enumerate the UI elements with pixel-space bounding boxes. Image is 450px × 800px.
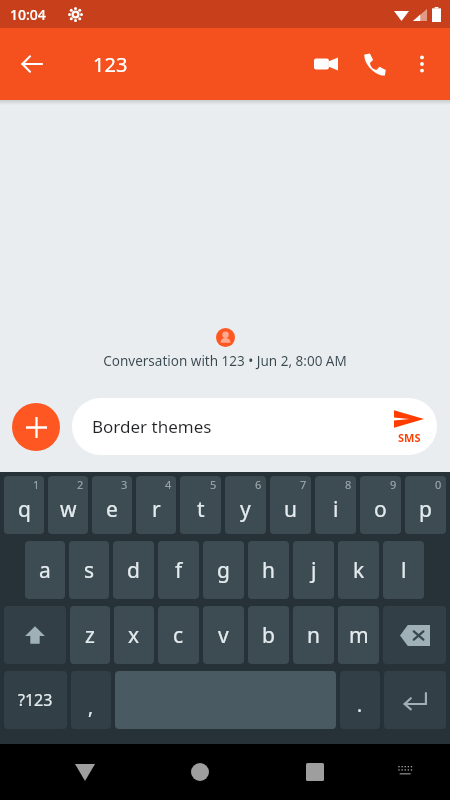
button[interactable]: r: [136, 476, 176, 534]
staticText: p: [419, 495, 432, 524]
button[interactable]: k: [338, 541, 379, 599]
button[interactable]: d: [113, 541, 154, 599]
button[interactable]: Back: [61, 748, 109, 796]
staticText: 5: [210, 477, 217, 492]
staticText: h: [262, 556, 275, 585]
button[interactable]: b: [248, 606, 289, 664]
staticText: c: [173, 621, 184, 650]
button[interactable]: w: [48, 476, 88, 534]
staticText: l: [401, 556, 407, 585]
button[interactable]: g: [203, 541, 244, 599]
staticText: a: [39, 556, 51, 585]
button[interactable]: l: [383, 541, 424, 599]
staticText: b: [262, 621, 275, 650]
button[interactable]: Backspace: [383, 606, 446, 664]
button[interactable]: p: [405, 476, 446, 534]
button[interactable]: i: [315, 476, 356, 534]
staticText: i: [333, 495, 339, 524]
button[interactable]: ,: [71, 671, 111, 729]
button[interactable]: a: [25, 541, 65, 599]
staticText: o: [374, 495, 387, 524]
button[interactable]: y: [225, 476, 266, 534]
staticText: m: [349, 621, 369, 650]
staticText: e: [106, 495, 118, 524]
button[interactable]: c: [158, 606, 199, 664]
button[interactable]: z: [70, 606, 110, 664]
button[interactable]: Border themes: [72, 398, 437, 455]
button[interactable]: v: [203, 606, 244, 664]
button[interactable]: s: [69, 541, 109, 599]
button[interactable]: x: [114, 606, 154, 664]
staticText: w: [60, 495, 77, 524]
button[interactable]: u: [270, 476, 311, 534]
button[interactable]: Recents: [291, 748, 339, 796]
staticText: 123: [93, 51, 128, 78]
staticText: z: [85, 621, 95, 650]
button[interactable]: o: [360, 476, 401, 534]
button[interactable]: More options: [398, 40, 446, 88]
button[interactable]: t: [180, 476, 221, 534]
staticText: 0: [435, 477, 442, 492]
button[interactable]: Keyboard: [385, 750, 429, 794]
staticText: ,: [88, 694, 94, 720]
staticText: Border themes: [92, 415, 212, 438]
button[interactable]: Send SMS: [394, 409, 424, 445]
button[interactable]: n: [293, 606, 334, 664]
staticText: ?123: [18, 689, 53, 711]
staticText: 3: [121, 477, 128, 492]
staticText: 1: [33, 477, 40, 492]
staticText: 4: [165, 477, 172, 492]
staticText: v: [218, 621, 229, 650]
button[interactable]: Call: [350, 40, 398, 88]
staticText: y: [240, 495, 251, 524]
staticText: s: [84, 556, 95, 585]
staticText: .: [357, 692, 363, 718]
button[interactable]: Enter: [384, 671, 446, 729]
staticText: t: [197, 495, 205, 524]
button[interactable]: j: [293, 541, 334, 599]
staticText: x: [128, 621, 140, 650]
button[interactable]: Back: [8, 40, 56, 88]
staticText: 8: [345, 477, 352, 492]
button[interactable]: q: [4, 476, 44, 534]
staticText: k: [353, 556, 365, 585]
staticText: 7: [300, 477, 307, 492]
button[interactable]: h: [248, 541, 289, 599]
button[interactable]: f: [158, 541, 199, 599]
button[interactable]: Add attachment: [12, 403, 60, 451]
staticText: SMS: [398, 430, 421, 445]
staticText: q: [18, 495, 31, 524]
staticText: f: [175, 556, 183, 585]
staticText: u: [284, 495, 297, 524]
staticText: n: [307, 621, 320, 650]
staticText: d: [127, 556, 140, 585]
staticText: 10:04: [10, 5, 46, 24]
staticText: g: [217, 556, 230, 585]
button[interactable]: Home: [176, 748, 224, 796]
staticText: Conversation with 123 • Jun 2, 8:00 AM: [103, 352, 347, 370]
button[interactable]: Video call: [302, 40, 350, 88]
staticText: j: [311, 556, 317, 585]
button[interactable]: Shift: [4, 606, 66, 664]
button[interactable]: .: [340, 671, 380, 729]
button[interactable]: m: [338, 606, 379, 664]
staticText: r: [152, 495, 161, 524]
button[interactable]: e: [92, 476, 132, 534]
staticText: 2: [77, 477, 84, 492]
staticText: 6: [255, 477, 262, 492]
staticText: 9: [390, 477, 397, 492]
button[interactable]: ?123: [4, 671, 67, 729]
